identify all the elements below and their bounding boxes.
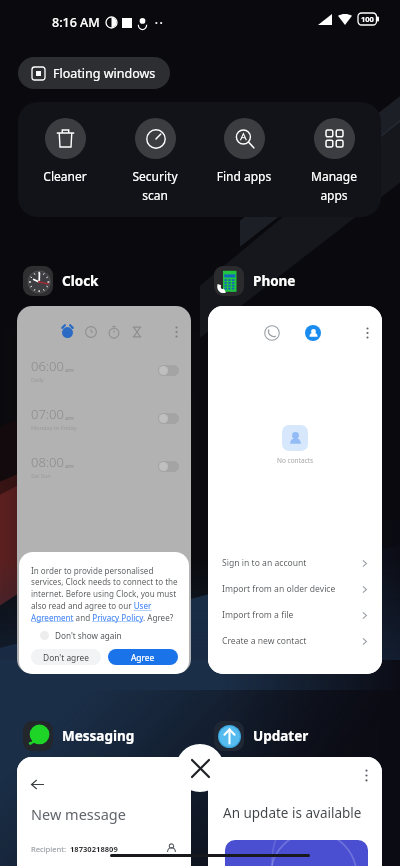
staticText: Agree xyxy=(131,652,155,663)
button[interactable]: Create a new contact xyxy=(208,628,382,654)
button[interactable]: Don't agree xyxy=(31,649,101,665)
button[interactable]: New message xyxy=(17,757,191,866)
button[interactable]: Import from a file xyxy=(208,602,382,628)
staticText: Import from an older device xyxy=(222,583,336,595)
button[interactable]: Find apps xyxy=(202,118,286,184)
staticText: Sign in to an account xyxy=(222,557,307,569)
staticText: 8:16 AM xyxy=(52,14,100,31)
staticText: Daily xyxy=(31,376,44,384)
staticText: 06:00 xyxy=(31,357,64,375)
staticText: Updater xyxy=(253,727,309,745)
staticText: No contacts xyxy=(277,456,314,465)
staticText: Sat Sun xyxy=(31,472,51,480)
button[interactable]: Security scan xyxy=(113,118,197,203)
staticText: Security scan xyxy=(113,168,197,203)
button[interactable]: Floating windows xyxy=(18,57,170,89)
button[interactable]: Import from an older device xyxy=(208,576,382,602)
staticText: am xyxy=(65,366,74,374)
staticText: Import from a file xyxy=(222,609,294,621)
staticText: Recipient: xyxy=(31,844,66,854)
staticText: am xyxy=(65,462,74,470)
staticText: New message xyxy=(31,804,126,824)
staticText: In order to provide personalised service… xyxy=(31,565,178,623)
button[interactable]: Manage apps xyxy=(292,118,376,203)
staticText: Floating windows xyxy=(53,65,156,82)
staticText: Don't agree xyxy=(43,652,90,663)
staticText: 100 xyxy=(361,14,374,24)
button[interactable]: Phone xyxy=(214,266,296,296)
button[interactable]: 06:00 xyxy=(17,306,191,674)
staticText: An update is available xyxy=(223,804,362,822)
staticText: Cleaner xyxy=(23,168,107,184)
button[interactable]: Sign in to an account xyxy=(208,550,382,576)
button[interactable]: No contacts xyxy=(208,306,382,674)
staticText: Clock xyxy=(62,272,99,290)
button[interactable]: Close all xyxy=(176,744,224,792)
staticText: Monday to Friday xyxy=(31,424,77,432)
staticText: Find apps xyxy=(202,168,286,184)
button[interactable]: Messaging xyxy=(23,721,135,751)
staticText: 07:00 xyxy=(31,405,64,423)
staticText: Messaging xyxy=(62,727,135,745)
button[interactable]: An update is available xyxy=(208,757,382,866)
staticText: Phone xyxy=(253,272,296,290)
button[interactable]: Clock xyxy=(23,266,99,296)
button[interactable]: Updater xyxy=(214,721,309,751)
staticText: 18730218809 xyxy=(70,844,118,854)
staticText: Create a new contact xyxy=(222,635,307,647)
staticText: Manage apps xyxy=(292,168,376,203)
staticText: Don't show again xyxy=(55,630,122,641)
staticText: 08:00 xyxy=(31,453,64,471)
button[interactable]: Cleaner xyxy=(23,118,107,184)
staticText: am xyxy=(65,414,74,422)
button[interactable]: Agree xyxy=(108,649,178,665)
